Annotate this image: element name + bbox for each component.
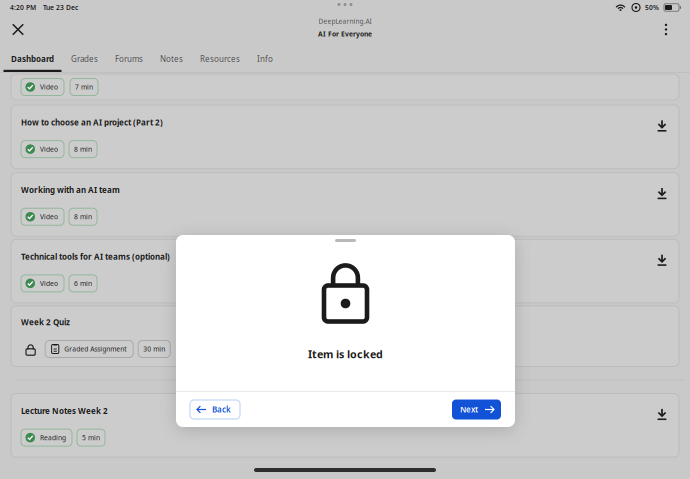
staticText: Info	[257, 54, 273, 64]
staticText: Video	[40, 145, 58, 154]
staticText: Grades	[71, 54, 98, 64]
staticText: 7 min	[75, 83, 93, 91]
staticText: Graded Assignment	[64, 345, 126, 353]
button[interactable]: Dashboard	[2, 46, 62, 72]
staticText: Notes	[160, 54, 183, 64]
button[interactable]: Resources	[191, 46, 248, 72]
staticText: Lecture Notes Week 2	[21, 405, 108, 416]
staticText: Video	[40, 279, 58, 288]
button[interactable]: Notes	[151, 46, 191, 72]
staticText: Dashboard	[11, 54, 54, 64]
staticText: 5 min	[82, 433, 100, 442]
button[interactable]: Video	[11, 73, 679, 101]
staticText: Technical tools for AI teams (optional)	[21, 251, 170, 262]
staticText: Video	[40, 83, 58, 91]
button[interactable]: Back	[190, 400, 240, 419]
button[interactable]: Info	[248, 46, 281, 72]
button[interactable]: Forums	[106, 46, 151, 72]
staticText: 8 min	[74, 145, 92, 154]
staticText: Reading	[40, 433, 66, 442]
button[interactable]: Lecture Notes Week 2	[11, 393, 679, 457]
button[interactable]: Close course	[5, 15, 31, 44]
staticText: Forums	[115, 54, 143, 64]
button[interactable]: Week 2 Quiz	[11, 306, 679, 366]
staticText: 50%	[645, 3, 659, 12]
staticText: Item is locked	[308, 347, 383, 361]
button[interactable]: Grades	[62, 46, 106, 72]
button[interactable]: Technical tools for AI teams (optional)	[11, 239, 679, 303]
button[interactable]: Next	[452, 399, 501, 419]
staticText: Back	[212, 404, 231, 415]
staticText: 8 min	[74, 212, 92, 221]
staticText: Working with an AI team	[21, 185, 120, 195]
staticText: Tue 23 Dec	[43, 3, 78, 12]
button[interactable]: How to choose an AI project (Part 2)	[11, 105, 679, 169]
staticText: 6 min	[74, 279, 92, 288]
staticText: Resources	[200, 54, 240, 64]
staticText: Video	[40, 212, 58, 221]
staticText: Next	[460, 404, 478, 415]
button[interactable]: Working with an AI team	[11, 173, 679, 236]
staticText: 30 min	[143, 345, 165, 353]
staticText: AI For Everyone	[318, 29, 372, 38]
staticText: DeepLearning.AI	[318, 17, 371, 25]
staticText: 4:20 PM	[10, 3, 36, 12]
staticText: Week 2 Quiz	[21, 317, 70, 327]
button[interactable]: More options	[650, 14, 682, 44]
staticText: How to choose an AI project (Part 2)	[21, 117, 163, 128]
